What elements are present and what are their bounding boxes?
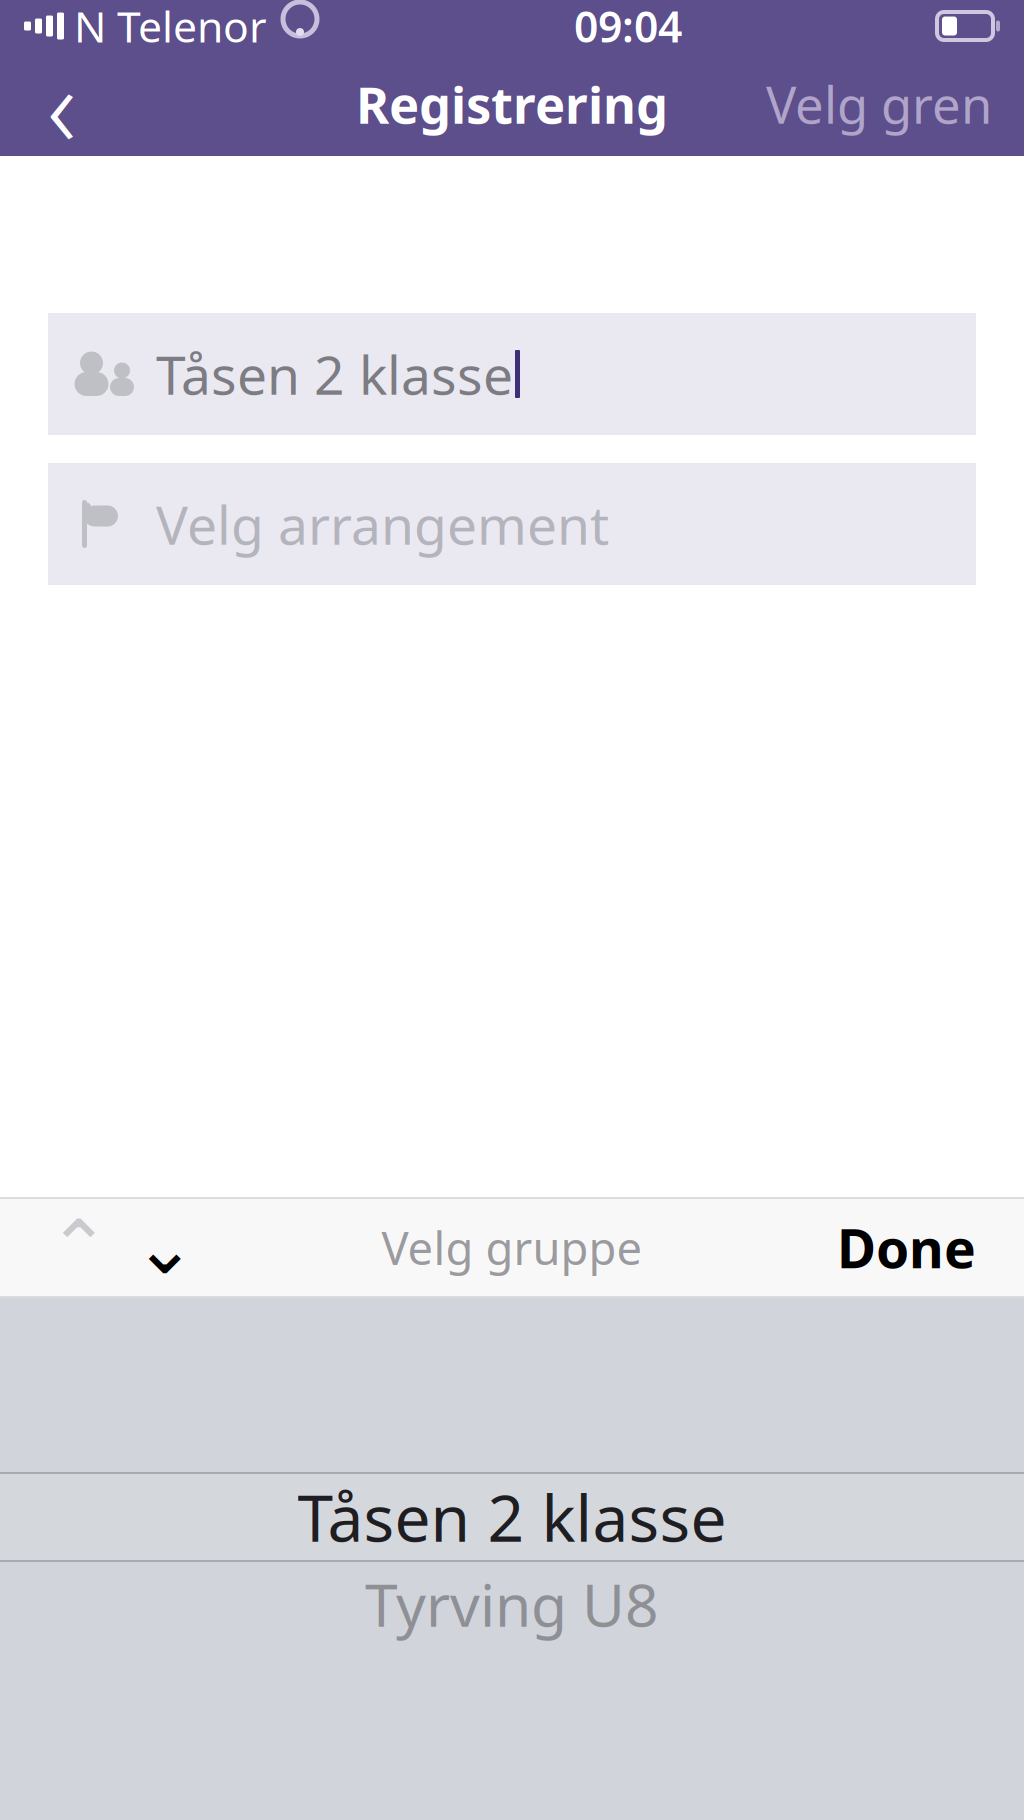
button[interactable]: Back (18, 60, 106, 148)
staticText: Tåsen 2 klasse (297, 1474, 726, 1559)
staticText: Velg gruppe (381, 1217, 642, 1278)
staticText: ‹ (47, 30, 77, 178)
button[interactable]: Done (825, 1204, 988, 1290)
staticText: Velg arrangement (156, 489, 609, 559)
staticText: Registrering (356, 70, 668, 138)
staticText: Tyrving U8 (365, 1565, 659, 1643)
staticText: Tåsen 2 klasse (156, 339, 513, 409)
button[interactable]: Velg arrangement (48, 463, 976, 585)
staticText: Done (837, 1212, 976, 1283)
button[interactable]: Previous field (36, 1204, 122, 1290)
staticText: ⌃ (47, 1205, 110, 1290)
staticText: Velg gren (766, 70, 992, 138)
staticText: N Telenor (74, 0, 267, 54)
staticText: ⌄ (133, 1205, 196, 1290)
button[interactable]: Next field (122, 1204, 208, 1290)
button[interactable]: Tåsen 2 klasse (48, 313, 976, 435)
staticText: 09:04 (574, 0, 682, 54)
button[interactable]: Velg gren (752, 60, 1006, 148)
